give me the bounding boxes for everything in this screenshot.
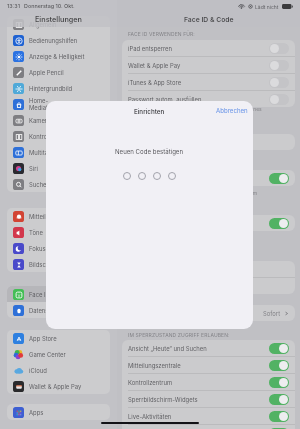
staticText: Wallet & Apple Pay xyxy=(29,383,82,390)
staticText: Mediathek xyxy=(29,104,59,111)
staticText: Multitasking xyxy=(29,149,63,156)
button[interactable]: On xyxy=(269,394,289,405)
button[interactable]: Suchen xyxy=(7,176,110,192)
staticText: Datenschutz xyxy=(29,307,64,314)
staticText: Mitteilungszentrale xyxy=(128,362,269,369)
button[interactable]: Code deaktivieren xyxy=(122,278,295,294)
button[interactable]: Mitteilungen xyxy=(7,208,110,224)
button[interactable]: On xyxy=(269,377,289,388)
staticText: Kontrollzentrum xyxy=(128,379,269,386)
button[interactable]: Abbrechen xyxy=(208,102,253,119)
staticText: Apps xyxy=(29,409,44,416)
staticText: Kontrollzentrum xyxy=(29,133,74,140)
staticText: Live-Aktivitäten xyxy=(128,413,269,420)
button[interactable]: Face ID & Code xyxy=(7,286,110,302)
staticText: Wallet & Apple Pay xyxy=(128,62,269,69)
staticText: Kamera xyxy=(29,117,51,124)
button[interactable]: Kontrollzentrum xyxy=(7,128,110,144)
button[interactable]: On xyxy=(269,428,289,429)
staticText: Bildschirmzeit xyxy=(29,261,69,268)
staticText: Passwort autom. ausfüllen xyxy=(128,96,269,103)
button[interactable]: On xyxy=(269,343,289,354)
staticText: Code ändern xyxy=(128,266,289,273)
button[interactable]: Töne xyxy=(7,224,110,240)
button[interactable]: Apple Pencil xyxy=(7,64,110,80)
button[interactable]: iTunes & App Store xyxy=(122,74,295,90)
button[interactable]: iCloud xyxy=(7,362,110,378)
button[interactable]: On xyxy=(269,411,289,422)
staticText: iCloud xyxy=(29,367,47,374)
staticText: Fokus xyxy=(29,245,46,252)
staticText: Abbrechen xyxy=(216,107,248,114)
button[interactable]: Off xyxy=(269,77,289,88)
button[interactable]: Wallet & Apple Pay xyxy=(7,378,110,394)
button[interactable]: Hintergrundbild xyxy=(7,80,110,96)
staticText: Face ID & Code xyxy=(29,291,72,298)
button[interactable]: Allgemein xyxy=(7,16,110,32)
button[interactable]: Game Center xyxy=(7,346,110,362)
staticText: Siri xyxy=(29,165,38,172)
button[interactable]: iPad entsperren xyxy=(122,40,295,56)
button[interactable]: Code anfordern xyxy=(122,305,295,321)
button[interactable]: Fokus xyxy=(7,240,110,256)
staticText: Mitteilungen xyxy=(29,213,64,220)
staticText: Code anfordern xyxy=(128,310,263,317)
staticText: Anzeige & Helligkeit xyxy=(29,53,85,60)
button[interactable]: Passwort autom. ausfüllen xyxy=(122,91,295,107)
staticText: Donnerstag 10. Okt. xyxy=(24,3,75,10)
staticText: Für Face ID Aufmerksamkeit erforderlich xyxy=(128,175,269,182)
button[interactable]: Kontrollzentrum xyxy=(122,374,295,390)
staticText: Allgemein xyxy=(29,21,57,28)
button[interactable]: Bildschirmzeit xyxy=(7,256,110,272)
button[interactable]: Off xyxy=(269,60,289,71)
staticText: Ansicht „Heute“ und Suchen xyxy=(128,345,269,352)
button[interactable]: Code ändern xyxy=(122,261,295,277)
button[interactable]: Für Face ID Aufmerksamkeit erforderlich xyxy=(122,170,295,186)
staticText: Neuen Code bestätigen xyxy=(115,148,184,155)
button[interactable]: Multitasking xyxy=(7,144,110,160)
button[interactable]: Face ID konfigurieren xyxy=(122,134,295,150)
button[interactable]: On xyxy=(269,218,289,229)
staticText: Sperrbildschirm-Widgets xyxy=(128,396,269,403)
button[interactable]: Sperrbildschirm-Widgets xyxy=(122,391,295,407)
staticText: Hintergrundbild xyxy=(29,85,73,92)
staticText: 13:31 xyxy=(7,3,20,10)
staticText: Face ID konfigurieren xyxy=(128,139,289,146)
button[interactable]: Anzeige & Helligkeit xyxy=(7,48,110,64)
button[interactable]: Datenschutz xyxy=(7,302,110,318)
staticText: Game Center xyxy=(29,351,66,358)
button[interactable]: Off xyxy=(269,94,289,105)
staticText: FACE ID VERWENDEN FÜR: xyxy=(128,31,195,37)
staticText: Sofort xyxy=(263,310,281,317)
staticText: Code deaktivieren xyxy=(128,283,289,290)
button[interactable]: Home-Steuerung xyxy=(122,425,295,429)
staticText: Home- xyxy=(29,97,49,104)
button[interactable]: Wallet & Apple Pay xyxy=(122,57,295,73)
button[interactable]: Apps xyxy=(7,404,110,420)
button[interactable]: Mitteilungszentrale xyxy=(122,357,295,373)
button[interactable]: Haptisches Feedback xyxy=(122,215,295,231)
staticText: Face ID & Code xyxy=(184,15,234,23)
button[interactable]: Home- xyxy=(7,96,110,112)
staticText: iTunes & App Store xyxy=(128,79,269,86)
button[interactable]: Ansicht „Heute“ und Suchen xyxy=(122,340,295,356)
button[interactable]: Siri xyxy=(7,160,110,176)
staticText: Bedienungshilfen xyxy=(29,37,78,44)
staticText: Haptisches Feedback xyxy=(128,220,269,227)
button[interactable]: App Store xyxy=(7,330,110,346)
staticText: Mit Face ID kannst du dein iPad entsperr… xyxy=(128,106,262,118)
staticText: Lädt nicht xyxy=(255,4,279,10)
staticText: IM SPERRZUSTAND ZUGRIFF ERLAUBEN: xyxy=(128,332,230,338)
button[interactable]: Bedienungshilfen xyxy=(7,32,110,48)
staticText: Einstellungen xyxy=(35,15,82,24)
staticText: App Store xyxy=(29,335,57,342)
button[interactable]: On xyxy=(269,173,289,184)
staticText: Suchen xyxy=(29,181,51,188)
staticText: Einrichten xyxy=(134,108,165,116)
staticText: Töne xyxy=(29,229,43,236)
button[interactable]: Live-Aktivitäten xyxy=(122,408,295,424)
staticText: Apple Pencil xyxy=(29,69,64,76)
button[interactable]: Kamera xyxy=(7,112,110,128)
button[interactable]: Off xyxy=(269,43,289,54)
button[interactable]: On xyxy=(269,360,289,371)
